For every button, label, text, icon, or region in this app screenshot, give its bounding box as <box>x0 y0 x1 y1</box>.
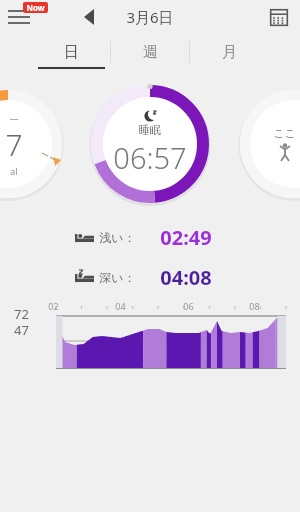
button[interactable]: Menu <box>6 2 52 32</box>
staticText: 3月6日 <box>126 7 174 27</box>
staticText: 週 <box>143 43 158 62</box>
staticText: 浅い： <box>99 230 136 245</box>
button[interactable]: Previous day <box>76 4 102 30</box>
staticText: — <box>9 112 19 124</box>
staticText: 月 <box>222 43 237 62</box>
button[interactable]: 月 <box>190 34 268 70</box>
staticText: 7 <box>5 124 23 165</box>
button[interactable]: 深い： <box>0 264 300 290</box>
staticText: 04:08 <box>160 264 212 290</box>
staticText: al <box>10 165 18 177</box>
staticText: 02:49 <box>160 224 212 250</box>
staticText: 72 <box>14 305 29 323</box>
staticText: 06:57 <box>113 138 187 177</box>
staticText: 深い： <box>99 270 136 285</box>
button[interactable]: 週 <box>111 34 189 70</box>
button[interactable]: Steps <box>0 86 66 202</box>
staticText: 睡眠 <box>139 123 161 137</box>
staticText: 47 <box>14 321 29 339</box>
button[interactable]: Activity <box>236 86 300 202</box>
staticText: 08 <box>249 300 260 312</box>
button[interactable]: 日 <box>32 34 110 70</box>
staticText: 02 <box>48 300 59 312</box>
button[interactable]: 浅い： <box>0 224 300 250</box>
staticText: 04 <box>115 300 126 312</box>
staticText: ここ <box>273 126 296 140</box>
staticText: 06 <box>183 300 194 312</box>
button[interactable]: Sleep details <box>88 82 212 206</box>
button[interactable]: Calendar <box>266 4 292 30</box>
staticText: 日 <box>64 43 79 62</box>
staticText: Now <box>26 2 45 13</box>
button[interactable]: Sleep chart <box>0 304 300 386</box>
button[interactable]: 3月6日 <box>126 7 174 27</box>
